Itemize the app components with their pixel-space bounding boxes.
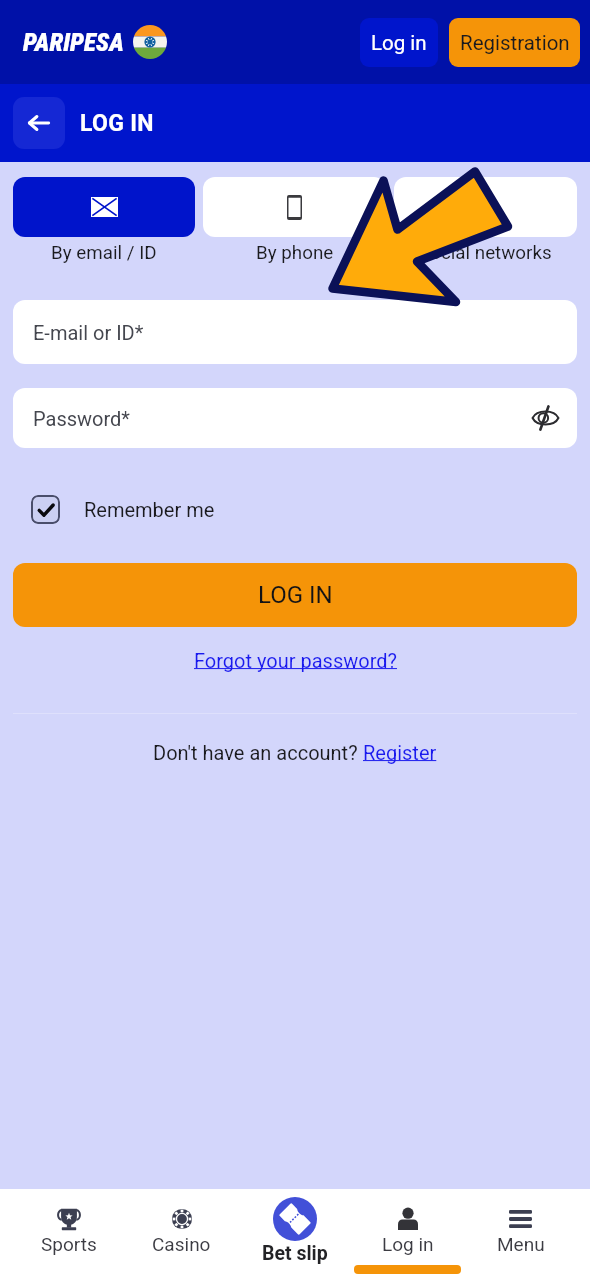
button[interactable]: PARIPESA bbox=[23, 25, 167, 59]
staticText: PARIPESA bbox=[23, 28, 124, 57]
staticText: Log in bbox=[382, 1233, 434, 1255]
button[interactable]: Menu bbox=[464, 1189, 577, 1280]
staticText: Sports bbox=[41, 1233, 97, 1255]
button[interactable]: Bet slip bbox=[238, 1189, 351, 1280]
button[interactable]: Log in bbox=[360, 18, 438, 67]
staticText: Password* bbox=[33, 407, 130, 430]
staticText: Don't have an account? bbox=[153, 741, 363, 764]
button[interactable]: Show password bbox=[527, 400, 563, 436]
staticText: Register bbox=[363, 741, 437, 764]
staticText: Social networks bbox=[419, 242, 552, 264]
staticText: LOG IN bbox=[80, 110, 154, 137]
button[interactable]: Registration bbox=[449, 18, 580, 67]
button[interactable]: Back bbox=[13, 97, 65, 149]
button[interactable]: E-mail or ID* bbox=[13, 300, 577, 364]
staticText: Casino bbox=[152, 1233, 211, 1255]
staticText: Registration bbox=[460, 31, 570, 55]
button[interactable]: LOG IN bbox=[13, 563, 577, 627]
button[interactable]: Register bbox=[363, 741, 437, 764]
button[interactable]: Casino bbox=[125, 1189, 238, 1280]
button[interactable]: Log in bbox=[351, 1189, 464, 1280]
button[interactable]: Sports bbox=[13, 1189, 125, 1280]
staticText: By phone bbox=[256, 242, 334, 264]
button[interactable]: By email / ID bbox=[13, 177, 195, 264]
button[interactable]: Password* bbox=[13, 388, 577, 448]
staticText: Forgot your password? bbox=[194, 649, 397, 672]
button[interactable]: Remember me bbox=[31, 494, 215, 524]
staticText: LOG IN bbox=[258, 581, 333, 609]
button[interactable]: By phone bbox=[203, 177, 386, 264]
staticText: By email / ID bbox=[51, 242, 157, 264]
staticText: Bet slip bbox=[262, 1242, 328, 1265]
staticText: Menu bbox=[497, 1233, 545, 1255]
staticText: E-mail or ID* bbox=[33, 321, 144, 344]
button[interactable]: Forgot your password? bbox=[194, 649, 397, 672]
button[interactable]: Social networks bbox=[394, 177, 577, 264]
staticText: Remember me bbox=[84, 498, 215, 521]
staticText: Log in bbox=[371, 31, 427, 55]
